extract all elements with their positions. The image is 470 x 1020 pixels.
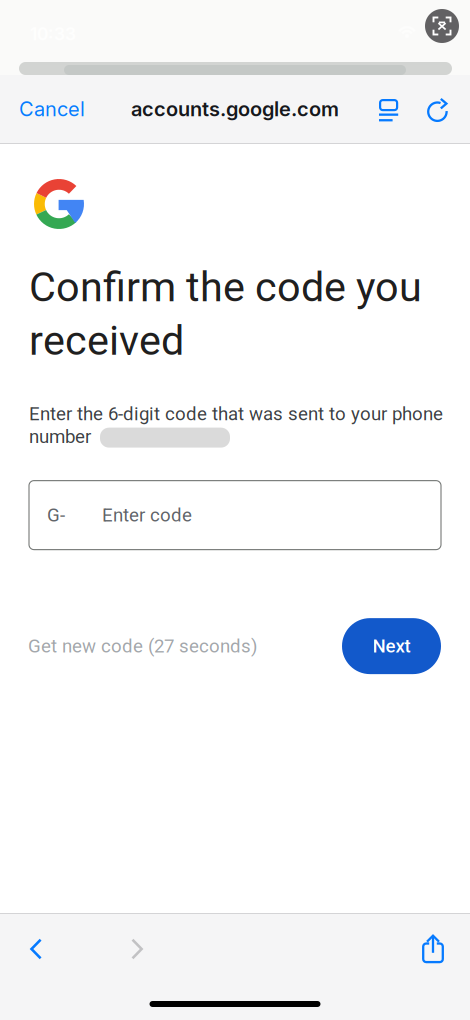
staticText: Next xyxy=(372,635,410,657)
staticText: Get new code (27 seconds) xyxy=(28,635,257,657)
button[interactable]: Share xyxy=(396,914,470,984)
button[interactable]: Next xyxy=(342,618,441,674)
button[interactable]: Back xyxy=(0,914,72,984)
staticText: Enter code xyxy=(102,504,192,526)
button[interactable]: Page settings xyxy=(360,75,418,143)
button[interactable]: Forward xyxy=(72,914,202,984)
staticText: Enter the 6-digit code that was sent to … xyxy=(29,403,443,425)
staticText: number xyxy=(29,426,91,448)
staticText: G- xyxy=(47,504,65,526)
button[interactable]: Cancel xyxy=(0,75,99,143)
staticText: Cancel xyxy=(19,97,85,121)
staticText: accounts.google.com xyxy=(131,97,339,121)
button[interactable]: Get new code (27 seconds) xyxy=(28,629,257,663)
button[interactable]: Reload xyxy=(418,75,470,143)
staticText: Confirm the code you received xyxy=(29,263,422,365)
